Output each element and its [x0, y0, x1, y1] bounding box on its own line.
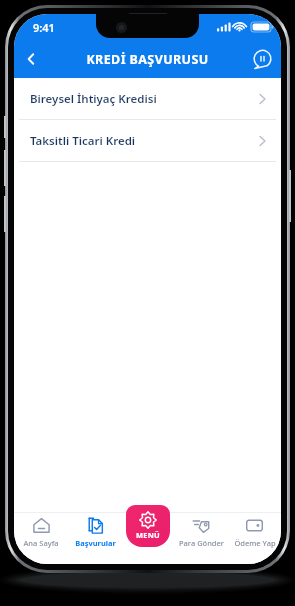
button[interactable]: Taksitli Ticari Kredi	[14, 120, 281, 161]
button[interactable]: Destek	[247, 44, 277, 74]
staticText: Başvurular	[75, 538, 116, 548]
staticText: Taksitli Ticari Kredi	[30, 133, 258, 149]
button[interactable]: Geri	[14, 42, 48, 76]
button[interactable]: Bireysel İhtiyaç Kredisi	[14, 78, 281, 119]
staticText: Ödeme Yap	[234, 538, 276, 548]
button[interactable]: Başvurular	[68, 516, 122, 564]
button[interactable]: Ödeme Yap	[228, 516, 281, 564]
button[interactable]: MENÜ	[126, 505, 170, 547]
staticText: MENÜ	[136, 530, 160, 540]
staticText: Para Gönder	[179, 538, 224, 548]
staticText: Bireysel İhtiyaç Kredisi	[30, 91, 258, 107]
button[interactable]: Ana Sayfa	[14, 516, 68, 564]
staticText: Ana Sayfa	[23, 538, 59, 548]
staticText: KREDİ BAŞVURUSU	[86, 51, 209, 68]
staticText: 9:41	[33, 20, 55, 35]
button[interactable]: Para Gönder	[175, 516, 228, 564]
